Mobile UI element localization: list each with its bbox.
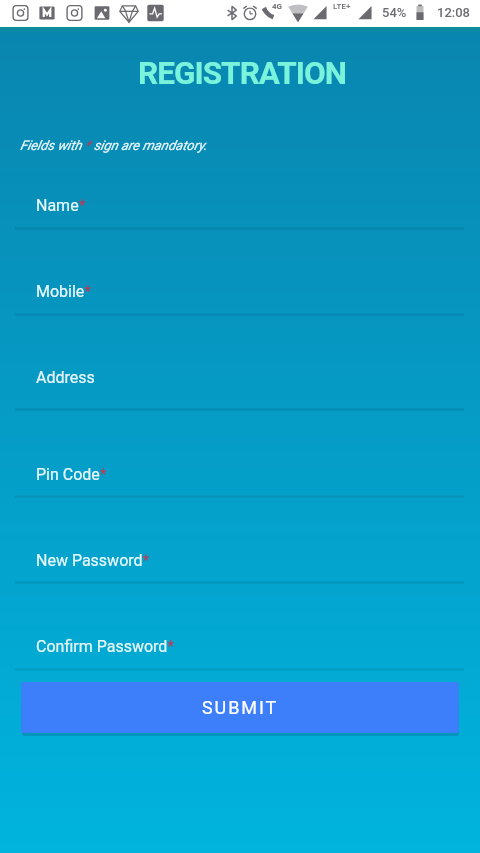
button[interactable]: Confirm Password*	[15, 625, 464, 671]
staticText: Pin Code*	[36, 465, 107, 484]
button[interactable]: SUBMIT	[21, 682, 459, 733]
button[interactable]: Mobile*	[15, 270, 464, 316]
staticText: Fields with * sign are mandatory.	[20, 138, 207, 154]
staticText: 12:08	[437, 5, 471, 20]
button[interactable]: Name*	[15, 184, 464, 230]
staticText: Mobile*	[36, 282, 92, 301]
staticText: SUBMIT	[202, 697, 279, 718]
button[interactable]: Pin Code*	[15, 453, 464, 498]
button[interactable]: Address	[15, 356, 464, 411]
staticText: LTE+	[333, 2, 351, 11]
staticText: Address	[36, 368, 95, 387]
staticText: Name*	[36, 196, 86, 215]
staticText: 54%	[382, 5, 407, 20]
button[interactable]: New Password*	[15, 539, 464, 584]
staticText: New Password*	[36, 551, 150, 570]
staticText: Confirm Password*	[36, 637, 175, 656]
staticText: REGISTRATION	[138, 55, 347, 92]
staticText: 4G	[272, 2, 283, 11]
